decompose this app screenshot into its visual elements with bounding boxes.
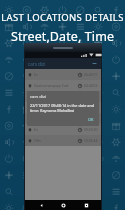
button[interactable]: More options [91,60,98,67]
button[interactable]: cars dizi [27,91,99,126]
staticText: 10:05:44 [84,138,98,143]
staticText: Ev [34,127,38,132]
button[interactable]: Kaynarca Mahallesi [25,102,101,113]
button[interactable]: Kadıköy İskelesi [25,91,101,102]
staticText: cars dizi [28,61,46,67]
button[interactable]: Ev [25,124,101,135]
button[interactable]: Ofis [25,135,101,146]
staticText: Street,Date, Time [0,28,125,45]
staticText: LAST LOCATIONS DETAILS [0,11,125,24]
staticText: Kadıköy İskelesi [34,94,61,99]
staticText: Gaziosmanpaşa Cad. [34,83,70,88]
button[interactable]: Recents [79,200,93,210]
button[interactable]: OK [86,116,96,123]
staticText: 22/11/2017 09:48:14 in the date and time… [30,103,96,113]
button[interactable]: Ataşehir Bulvarı [25,113,101,124]
staticText: Ofis [34,138,41,143]
staticText: 09:20:30 [84,127,98,132]
button[interactable]: cars dizi [25,58,101,69]
staticText: 07:12:05 [84,116,98,121]
button[interactable]: Back [34,200,48,210]
button[interactable]: Ev [25,69,101,80]
staticText: OK [88,117,94,122]
staticText: Ev [34,72,38,77]
button[interactable]: Home [56,200,70,210]
staticText: 04:48:52 [84,83,98,88]
staticText: cars dizi [30,94,47,100]
button[interactable]: Gaziosmanpaşa Cad. [25,80,101,91]
staticText: 06:30:14 [84,105,98,110]
staticText: Kaynarca Mahallesi [34,105,67,110]
staticText: 06:40:15 [84,72,98,77]
